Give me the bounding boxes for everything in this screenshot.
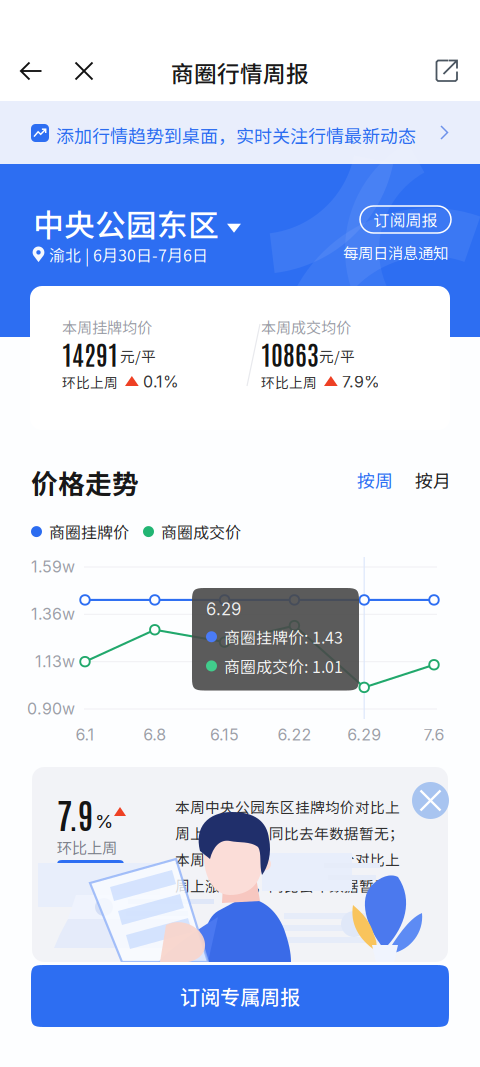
button[interactable]: 按周 (352, 463, 398, 497)
button[interactable]: 订阅专属周报 (31, 965, 449, 1027)
staticText: 添加行情趋势到桌面，实时关注行情最新动态 (56, 122, 416, 148)
staticText: 环比上周 (261, 372, 317, 392)
staticText: 1.59w (31, 557, 75, 576)
button[interactable]: 订阅周报 (360, 206, 451, 233)
staticText: 6.29 (347, 725, 381, 744)
staticText: 成交均价 (58, 860, 122, 884)
staticText: 元/平 (120, 345, 156, 366)
staticText: % (95, 810, 113, 833)
button[interactable]: Back (4, 46, 58, 96)
staticText: 本周成交均价 (261, 316, 351, 338)
staticText: 商圈成交价 (161, 520, 241, 543)
staticText: 环比上周 (57, 836, 117, 858)
staticText: 订阅专属周报 (180, 981, 300, 1010)
staticText: 6.8 (143, 725, 166, 744)
staticText: 7.9 (57, 791, 93, 836)
staticText: 商圈挂牌价: 1.43 (224, 625, 343, 648)
staticText: 商圈挂牌价 (49, 520, 129, 543)
staticText: 0.90w (27, 699, 75, 718)
button[interactable]: Close (61, 46, 107, 96)
staticText: 本周中央公园东区挂牌均价对比上周上涨0.1%，同比去年数据暂无；本周中央公园东区… (175, 796, 404, 896)
button[interactable]: Close (412, 782, 449, 819)
staticText: 14291 (62, 336, 118, 370)
staticText: 1.36w (31, 604, 75, 624)
staticText: 中央公园东区 (33, 201, 219, 245)
staticText: 商圈成交价: 1.01 (224, 654, 343, 677)
button[interactable]: Share (422, 46, 472, 96)
staticText: 6.15 (210, 725, 239, 744)
staticText: 7.6 (423, 725, 444, 744)
staticText: 按周 (357, 467, 393, 493)
staticText: 订阅周报 (373, 208, 437, 231)
staticText: 环比上周 (62, 372, 118, 392)
button[interactable]: 中央公园东区 (33, 201, 241, 245)
staticText: 6.22 (277, 725, 311, 744)
staticText: 每周日消息通知 (343, 241, 448, 263)
staticText: 0.1% (143, 372, 179, 391)
button[interactable]: 添加行情趋势到桌面，实时关注行情最新动态 (0, 101, 480, 164)
staticText: 6.1 (75, 725, 94, 744)
staticText: 价格走势 (31, 463, 139, 502)
staticText: 按月 (415, 467, 451, 493)
staticText: 10863 (261, 336, 319, 370)
button[interactable]: 按月 (410, 463, 456, 497)
staticText: 渝北 | 6月30日-7月6日 (49, 243, 208, 266)
staticText: 商圈行情周报 (171, 56, 309, 89)
staticText: 6.29 (206, 599, 241, 619)
staticText: 7.9% (342, 372, 380, 391)
staticText: 本周挂牌均价 (62, 316, 152, 338)
staticText: 元/平 (319, 345, 355, 366)
staticText: 1.13w (35, 652, 75, 671)
